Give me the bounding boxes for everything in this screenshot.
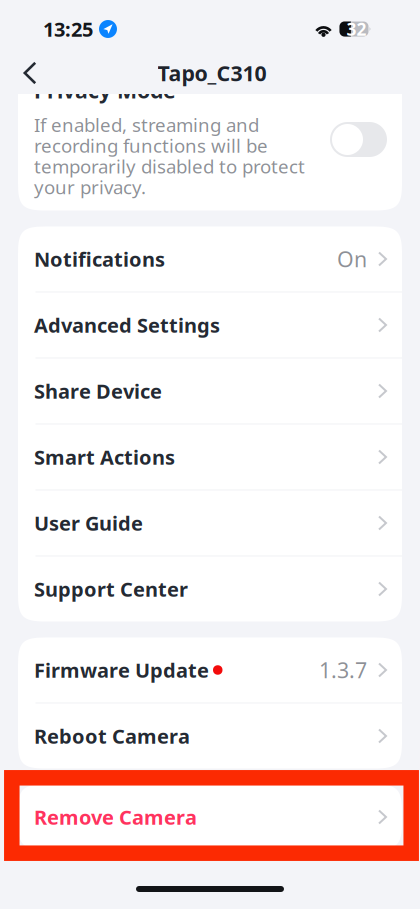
staticText: Firmware Update (34, 657, 209, 683)
button[interactable]: Smart Actions (18, 424, 402, 489)
button[interactable]: Back (12, 52, 48, 94)
staticText: 13:25 (43, 16, 93, 42)
button[interactable]: Advanced Settings (18, 292, 402, 357)
button[interactable]: Notifications (18, 226, 402, 291)
staticText: Remove Camera (34, 804, 197, 830)
button[interactable]: Firmware Update (18, 637, 402, 702)
staticText: User Guide (34, 510, 143, 536)
staticText: Smart Actions (34, 444, 175, 470)
staticText: Tapo_C310 (157, 59, 266, 87)
staticText: Privacy Mode (34, 76, 176, 104)
staticText: If enabled, streaming and recording func… (34, 112, 305, 199)
button[interactable]: User Guide (18, 490, 402, 555)
staticText: Reboot Camera (34, 723, 190, 749)
button[interactable]: Reboot Camera (18, 703, 402, 768)
staticText: On (337, 245, 367, 273)
button[interactable]: Support Center (18, 556, 402, 621)
button[interactable]: Privacy Mode toggle (330, 122, 387, 157)
button[interactable]: Share Device (18, 358, 402, 423)
staticText: Support Center (34, 576, 188, 602)
staticText: Share Device (34, 378, 162, 404)
staticText: Notifications (34, 246, 165, 272)
staticText: 32 (346, 17, 366, 40)
staticText: Advanced Settings (34, 312, 220, 338)
button[interactable]: Remove Camera (18, 784, 402, 849)
staticText: 1.3.7 (319, 656, 367, 684)
